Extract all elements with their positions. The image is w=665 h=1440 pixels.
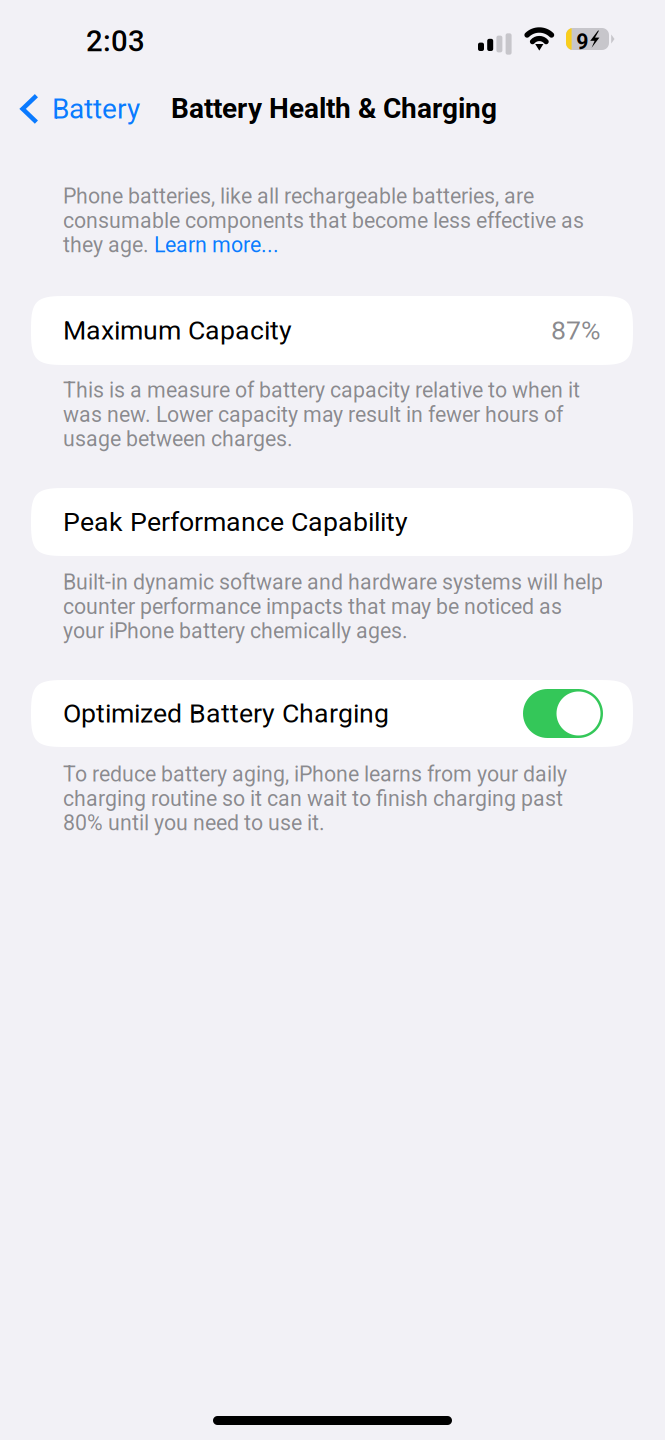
staticText: To reduce battery aging, iPhone learns f… bbox=[63, 762, 567, 787]
staticText: Built-in dynamic software and hardware s… bbox=[63, 570, 603, 595]
staticText: 9 bbox=[576, 29, 588, 54]
staticText: usage between charges. bbox=[63, 426, 293, 451]
staticText: Maximum Capacity bbox=[63, 315, 292, 346]
staticText: charging routine so it can wait to finis… bbox=[63, 786, 563, 811]
staticText: Optimized Battery Charging bbox=[63, 698, 389, 729]
button[interactable]: Maximum Capacity bbox=[31, 296, 633, 365]
staticText: Peak Performance Capability bbox=[63, 506, 408, 538]
staticText: 80% until you need to use it. bbox=[63, 810, 325, 835]
staticText: 87% bbox=[551, 315, 601, 346]
staticText: 2:03 bbox=[86, 24, 145, 58]
button[interactable]: Battery bbox=[0, 78, 156, 140]
button[interactable]: Optimized Battery Charging bbox=[31, 680, 633, 747]
staticText: Learn more... bbox=[154, 232, 279, 257]
staticText: Phone batteries, like all rechargeable b… bbox=[63, 184, 534, 209]
staticText: was new. Lower capacity may result in fe… bbox=[63, 402, 563, 427]
button[interactable]: Peak Performance Capability bbox=[31, 488, 633, 556]
staticText: This is a measure of battery capacity re… bbox=[63, 378, 580, 403]
button[interactable]: Learn more... bbox=[154, 232, 279, 257]
staticText: your iPhone battery chemically ages. bbox=[63, 618, 408, 643]
staticText: counter performance impacts that may be … bbox=[63, 594, 562, 619]
staticText: they age. bbox=[63, 232, 154, 257]
staticText: Battery bbox=[52, 93, 140, 125]
staticText: Battery Health & Charging bbox=[171, 92, 497, 125]
staticText: consumable components that become less e… bbox=[63, 208, 584, 233]
